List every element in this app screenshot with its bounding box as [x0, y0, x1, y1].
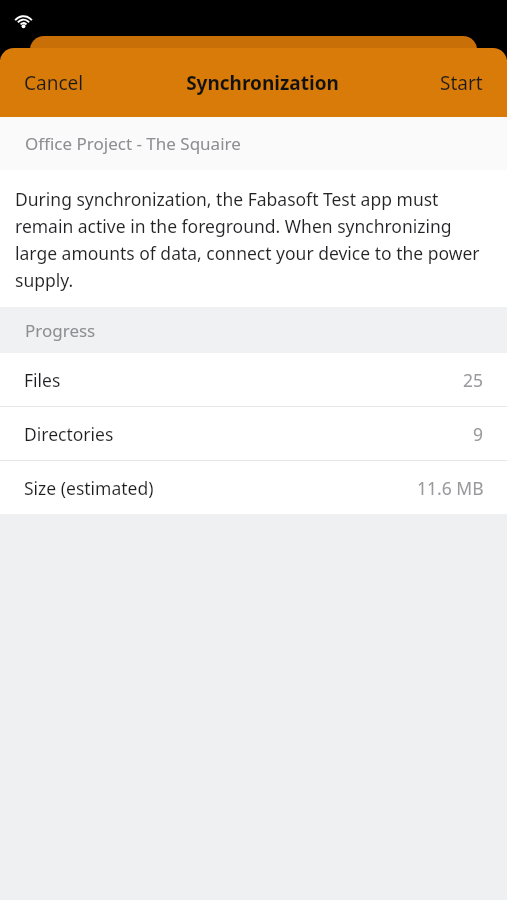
- staticText: Size (estimated): [24, 476, 154, 500]
- button[interactable]: Start: [424, 60, 507, 106]
- staticText: Cancel: [24, 70, 84, 96]
- button[interactable]: Size (estimated): [0, 461, 507, 514]
- staticText: 25: [463, 368, 484, 392]
- staticText: 11.6 MB: [417, 476, 484, 500]
- staticText: Synchronization: [186, 70, 339, 96]
- staticText: Progress: [25, 319, 96, 342]
- button[interactable]: Files: [0, 353, 507, 406]
- staticText: Office Project - The Squaire: [25, 132, 241, 155]
- button[interactable]: Directories: [0, 407, 507, 460]
- other: Wi-Fi signal: [12, 7, 35, 30]
- staticText: Directories: [24, 422, 114, 446]
- staticText: Files: [24, 368, 61, 392]
- staticText: During synchronization, the Fabasoft Tes…: [15, 187, 492, 292]
- button[interactable]: Cancel: [0, 60, 100, 106]
- staticText: 9: [473, 422, 484, 446]
- staticText: Start: [440, 70, 483, 96]
